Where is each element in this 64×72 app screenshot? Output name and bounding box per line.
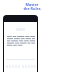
button[interactable]: App preview bbox=[3, 15, 38, 72]
staticText: Master the Rules bbox=[0, 2, 64, 11]
